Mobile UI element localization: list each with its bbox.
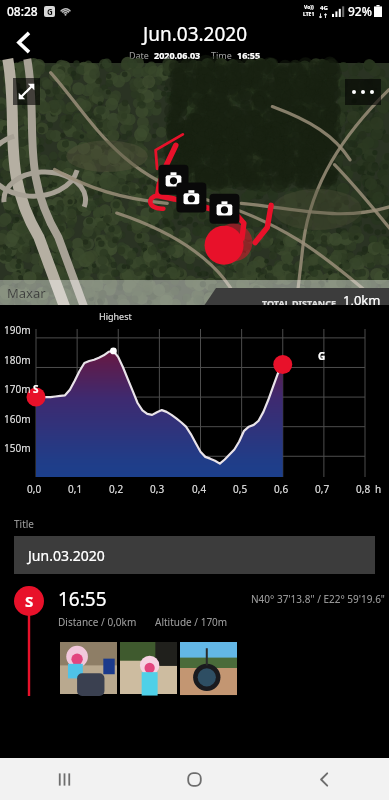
staticText: G (47, 6, 53, 17)
staticText: N40° 37'13.8" / E22° 59'19.6" (251, 592, 385, 606)
staticText: TOTAL DISTANCE (262, 297, 336, 309)
staticText: 0,0 (27, 482, 42, 496)
staticText: 0,4 (192, 482, 207, 496)
staticText: h (375, 482, 382, 496)
staticText: 180m (4, 353, 31, 367)
staticText: 0,5 (233, 482, 248, 496)
staticText: 0,1 (68, 482, 83, 496)
staticText: Jun.03.2020 (143, 21, 248, 47)
button[interactable]: Expand map (13, 78, 40, 105)
staticText: 0,3 (150, 482, 165, 496)
staticText: ↓↑ (318, 12, 329, 19)
staticText: Vo)) (304, 4, 314, 11)
button[interactable]: More options (345, 79, 381, 105)
button[interactable]: Back (259, 758, 389, 800)
staticText: 0,7 (315, 482, 330, 496)
staticText: 170m (4, 382, 31, 396)
staticText: 92% (348, 3, 372, 19)
staticText: S (25, 591, 34, 611)
staticText: 150m (4, 441, 31, 455)
staticText: Time (211, 49, 232, 61)
button[interactable]: Photo 2 (120, 642, 177, 694)
staticText: 0,8 (356, 482, 371, 496)
staticText: S (33, 382, 39, 396)
staticText: 16:55 (237, 49, 261, 61)
staticText: Jun.03.2020 (28, 546, 105, 565)
staticText: 160m (4, 412, 31, 426)
staticText: Title (14, 517, 34, 531)
staticText: Altitude / 170m (155, 615, 228, 629)
staticText: 2020.06.03 (154, 49, 201, 61)
staticText: 0,2 (109, 482, 124, 496)
staticText: 190m (4, 323, 31, 337)
staticText: 08:28 (7, 3, 38, 19)
staticText: Date (129, 49, 149, 61)
staticText: LTE1 (303, 11, 315, 18)
button[interactable]: Jun.03.2020 (14, 536, 375, 574)
button[interactable]: Home (129, 758, 259, 800)
staticText: 1,0km (343, 291, 381, 309)
staticText: 4G (320, 4, 328, 12)
button[interactable]: Photo 3 (180, 642, 237, 694)
staticText: 16:55 (58, 586, 107, 612)
staticText: 0,6 (274, 482, 289, 496)
staticText: Maxar (7, 284, 46, 302)
staticText: Distance / 0,0km (58, 615, 137, 629)
button[interactable]: Photo 1 (60, 642, 117, 694)
button[interactable]: Recent apps (0, 758, 129, 800)
button[interactable]: Back (0, 22, 46, 63)
staticText: Highest (99, 310, 132, 322)
staticText: G (318, 349, 326, 363)
